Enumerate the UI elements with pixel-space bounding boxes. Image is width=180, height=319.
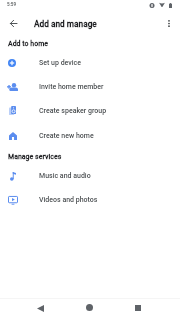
button[interactable]: Create new home xyxy=(0,124,180,148)
button[interactable]: Recent apps xyxy=(128,298,148,318)
button[interactable]: Set up device xyxy=(0,51,180,75)
button[interactable]: Back xyxy=(30,298,50,318)
staticText: Create speaker group xyxy=(39,107,107,115)
staticText: Invite home member xyxy=(39,83,104,91)
button[interactable]: Music and audio xyxy=(0,164,180,188)
staticText: 5:59 xyxy=(7,2,17,7)
staticText: Create new home xyxy=(39,132,94,140)
button[interactable]: Create speaker group xyxy=(0,99,180,123)
button[interactable]: More options xyxy=(160,14,178,32)
staticText: Music and audio xyxy=(39,172,91,180)
button[interactable]: Videos and photos xyxy=(0,188,180,212)
button[interactable]: Navigate up xyxy=(4,14,22,32)
staticText: Add to home xyxy=(8,40,48,48)
staticText: Videos and photos xyxy=(39,196,98,204)
staticText: Add and manage xyxy=(34,19,97,29)
button[interactable]: Invite home member xyxy=(0,75,180,99)
staticText: Manage services xyxy=(8,153,62,161)
staticText: Set up device xyxy=(39,59,81,67)
button[interactable]: Home xyxy=(79,297,99,317)
